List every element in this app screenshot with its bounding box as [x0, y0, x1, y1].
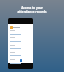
button[interactable]: Action	[20, 59, 22, 62]
staticText: Access to your	[21, 6, 43, 10]
staticText: attendance records	[17, 10, 47, 14]
